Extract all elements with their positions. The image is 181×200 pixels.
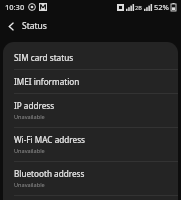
staticText: IMEI information: [14, 76, 80, 87]
staticText: Unavailable: [14, 113, 45, 121]
staticText: Wi-Fi MAC address: [14, 134, 85, 145]
button[interactable]: Bluetooth address: [3, 162, 178, 195]
staticText: 10:30: [5, 2, 25, 12]
staticText: Bluetooth address: [14, 168, 85, 179]
button[interactable]: SIM card status: [3, 46, 178, 69]
button[interactable]: IMEI information: [3, 70, 178, 93]
staticText: Unavailable: [14, 181, 45, 189]
button[interactable]: Wi-Fi MAC address: [3, 128, 178, 161]
staticText: 52%: [154, 2, 169, 12]
button[interactable]: Navigate up: [0, 15, 22, 37]
staticText: SIM card status: [14, 52, 74, 63]
staticText: Unavailable: [14, 147, 45, 155]
staticText: 2B: [135, 4, 142, 11]
staticText: Status: [22, 20, 47, 32]
staticText: IP address: [14, 100, 55, 111]
button[interactable]: IP address: [3, 94, 178, 127]
